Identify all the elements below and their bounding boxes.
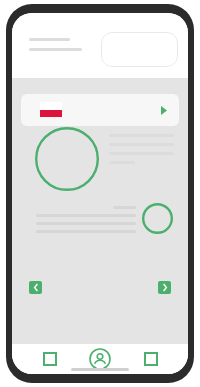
button[interactable] [21,94,179,126]
other: Badge [142,203,173,234]
button[interactable] [29,38,82,51]
button[interactable]: Previous [29,281,42,294]
button[interactable]: Home [37,346,63,372]
button[interactable]: Menu [138,346,164,372]
other: Avatar [35,127,99,191]
button[interactable]: Profile [87,346,113,372]
button[interactable]: Search [101,32,178,67]
button[interactable]: Next [158,281,171,294]
